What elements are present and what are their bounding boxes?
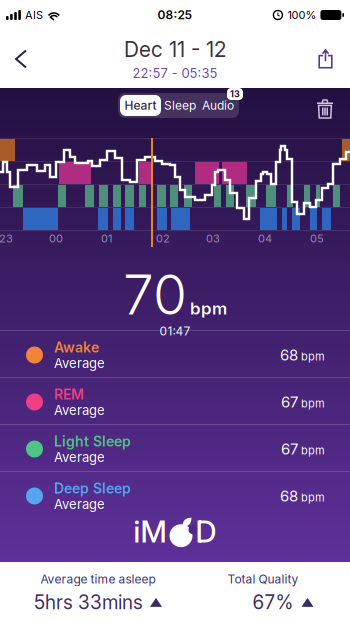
button[interactable]: Back — [0, 38, 34, 79]
staticText: 70 — [123, 262, 187, 327]
staticText: Light Sleep — [54, 433, 131, 450]
staticText: 01 — [101, 232, 112, 245]
staticText: 100% — [287, 8, 316, 21]
staticText: Dec 11 - 12 — [124, 37, 226, 62]
staticText: 67 — [281, 440, 298, 458]
staticText: Average — [54, 497, 105, 512]
staticText: Audio — [202, 98, 234, 113]
staticText: Heart — [124, 98, 156, 113]
staticText: 67% — [252, 591, 293, 614]
staticText: 03 — [206, 232, 220, 245]
staticText: Deep Sleep — [54, 480, 131, 497]
staticText: Average — [54, 356, 105, 371]
staticText: 13 — [230, 89, 240, 99]
staticText: 67 — [281, 393, 298, 411]
staticText: bpm — [301, 350, 325, 363]
staticText: Average time asleep — [40, 572, 155, 586]
staticText: AIS — [25, 8, 43, 21]
staticText: 04 — [258, 232, 272, 245]
staticText: REM — [54, 386, 84, 403]
staticText: 08:25 — [157, 8, 192, 22]
staticText: 68 — [280, 487, 298, 505]
staticText: 01:47 — [159, 324, 190, 338]
staticText: 23 — [0, 232, 13, 245]
staticText: 22:57 - 05:35 — [132, 66, 217, 81]
staticText: 00 — [49, 232, 63, 245]
button[interactable]: Audio — [199, 95, 237, 116]
button[interactable]: Share — [310, 38, 350, 79]
staticText: D — [195, 514, 216, 549]
staticText: 68 — [280, 346, 298, 364]
button[interactable]: Delete — [309, 92, 341, 126]
staticText: Total Quality — [227, 572, 298, 586]
button[interactable]: Heart — [120, 95, 161, 116]
staticText: 02 — [156, 232, 170, 245]
button[interactable]: Sleep — [161, 95, 199, 116]
staticText: Sleep — [164, 98, 196, 113]
staticText: 5hrs 33mins — [34, 591, 143, 614]
staticText: Average — [54, 450, 105, 465]
staticText: Average — [54, 403, 105, 418]
staticText: bpm — [301, 444, 325, 457]
staticText: Awake — [54, 339, 99, 356]
staticText: iM — [133, 514, 166, 549]
staticText: bpm — [301, 397, 325, 410]
staticText: 05 — [310, 232, 324, 245]
staticText: bpm — [190, 298, 227, 318]
staticText: bpm — [301, 491, 325, 504]
